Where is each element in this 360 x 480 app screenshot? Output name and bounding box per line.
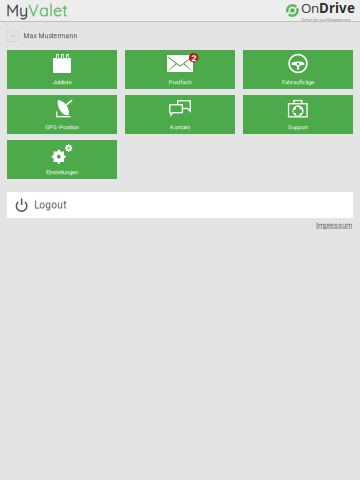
button[interactable]: Kontakt (125, 95, 235, 134)
staticText: Kontakt (170, 124, 190, 131)
staticText: Online Service Management (301, 17, 350, 22)
button[interactable]: Impressum (316, 221, 352, 230)
staticText: Impressum (316, 221, 352, 230)
staticText: Einstellungen (46, 169, 78, 176)
staticText: GPS-Position (45, 124, 79, 131)
button[interactable]: 2 (125, 50, 235, 89)
staticText: Valet (28, 0, 68, 20)
staticText: On (301, 0, 319, 17)
staticText: Support (288, 124, 308, 131)
button[interactable]: Support (243, 95, 353, 134)
staticText: Fahraufträge (282, 79, 314, 86)
button[interactable]: Logout (7, 192, 353, 218)
staticText: Logout (34, 199, 66, 211)
staticText: Jobliste (52, 79, 71, 86)
staticText: Postfach (168, 79, 191, 86)
staticText: My (6, 0, 28, 20)
button[interactable]: GPS-Position (7, 95, 117, 134)
staticText: 2 (191, 51, 196, 64)
button[interactable]: Einstellungen (7, 140, 117, 179)
staticText: Max Mustermann (23, 32, 77, 40)
button[interactable]: Fahraufträge (243, 50, 353, 89)
staticText: Drive (319, 0, 355, 17)
button[interactable]: Jobliste (7, 50, 117, 89)
